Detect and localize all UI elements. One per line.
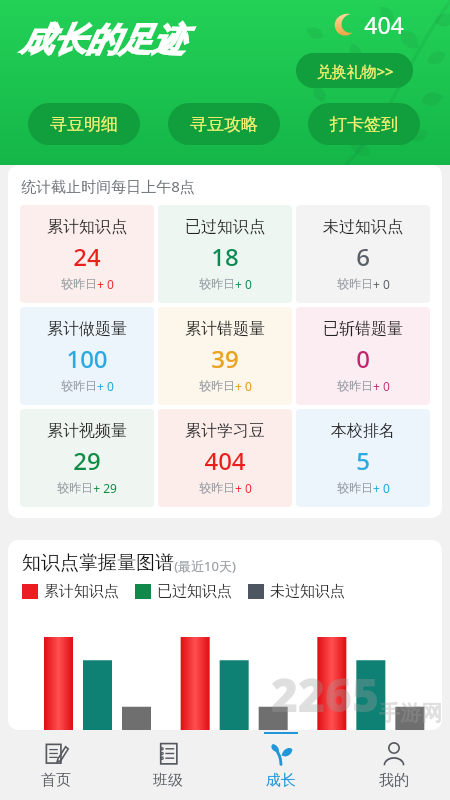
staticText: (最近10天): [174, 557, 236, 575]
staticText: 较昨日: [337, 276, 373, 291]
button[interactable]: 已斩错题量: [296, 307, 430, 405]
staticText: 较昨日: [199, 276, 235, 291]
staticText: 成长的足迹: [20, 19, 185, 61]
staticText: 较昨日: [337, 378, 373, 393]
staticText: 成长: [266, 771, 296, 790]
staticText: 寻豆攻略: [190, 114, 258, 135]
staticText: + 0: [97, 378, 114, 394]
staticText: 已过知识点: [157, 582, 232, 601]
staticText: 累计做题量: [47, 319, 127, 339]
staticText: 2265: [271, 663, 379, 726]
staticText: 本校排名: [331, 421, 395, 441]
staticText: 6: [356, 240, 370, 273]
button[interactable]: 已过知识点: [158, 205, 292, 303]
staticText: 手游网: [379, 700, 442, 726]
staticText: + 0: [97, 276, 114, 292]
staticText: 累计学习豆: [185, 421, 265, 441]
staticText: 404: [204, 444, 246, 477]
staticText: 较昨日: [61, 276, 97, 291]
button[interactable]: 兑换礼物>>: [296, 53, 413, 88]
button[interactable]: 未过知识点: [296, 205, 430, 303]
button[interactable]: 班级: [112, 730, 224, 800]
staticText: 累计知识点: [44, 582, 119, 601]
button[interactable]: 累计学习豆: [158, 409, 292, 507]
button[interactable]: 寻豆明细: [28, 103, 140, 145]
button[interactable]: 打卡签到: [308, 103, 420, 145]
staticText: 知识点掌握量图谱: [22, 551, 174, 575]
staticText: 统计截止时间每日上午8点: [21, 176, 195, 196]
staticText: 首页: [41, 771, 71, 790]
staticText: + 29: [93, 480, 117, 496]
staticText: 18: [211, 240, 239, 273]
staticText: + 0: [373, 378, 390, 394]
staticText: 累计知识点: [47, 217, 127, 237]
staticText: 累计错题量: [185, 319, 265, 339]
staticText: 已过知识点: [185, 217, 265, 237]
staticText: 已斩错题量: [323, 319, 403, 339]
staticText: 24: [73, 240, 101, 273]
button[interactable]: 成长: [224, 730, 337, 800]
staticText: 5: [356, 444, 370, 477]
staticText: 兑换礼物>>: [316, 61, 394, 81]
staticText: 0: [356, 342, 370, 375]
staticText: 打卡签到: [330, 114, 398, 135]
button[interactable]: 累计错题量: [158, 307, 292, 405]
staticText: 较昨日: [61, 378, 97, 393]
staticText: 寻豆明细: [50, 114, 118, 135]
staticText: 未过知识点: [270, 582, 345, 601]
staticText: 未过知识点: [323, 217, 403, 237]
staticText: 我的: [379, 771, 409, 790]
staticText: 累计视频量: [47, 421, 127, 441]
staticText: + 0: [235, 480, 252, 496]
staticText: 较昨日: [57, 480, 93, 495]
button[interactable]: 我的: [337, 730, 450, 800]
staticText: + 0: [373, 276, 390, 292]
staticText: 29: [73, 444, 101, 477]
staticText: 较昨日: [199, 480, 235, 495]
staticText: 较昨日: [337, 480, 373, 495]
staticText: 404: [364, 9, 404, 40]
button[interactable]: 累计视频量: [20, 409, 154, 507]
staticText: 39: [211, 342, 239, 375]
button[interactable]: 寻豆攻略: [168, 103, 280, 145]
staticText: 100: [66, 342, 108, 375]
staticText: 较昨日: [199, 378, 235, 393]
button[interactable]: 本校排名: [296, 409, 430, 507]
staticText: + 0: [373, 480, 390, 496]
staticText: + 0: [235, 378, 252, 394]
button[interactable]: 首页: [0, 730, 112, 800]
button[interactable]: 累计做题量: [20, 307, 154, 405]
staticText: + 0: [235, 276, 252, 292]
button[interactable]: 累计知识点: [20, 205, 154, 303]
staticText: 班级: [153, 771, 183, 790]
